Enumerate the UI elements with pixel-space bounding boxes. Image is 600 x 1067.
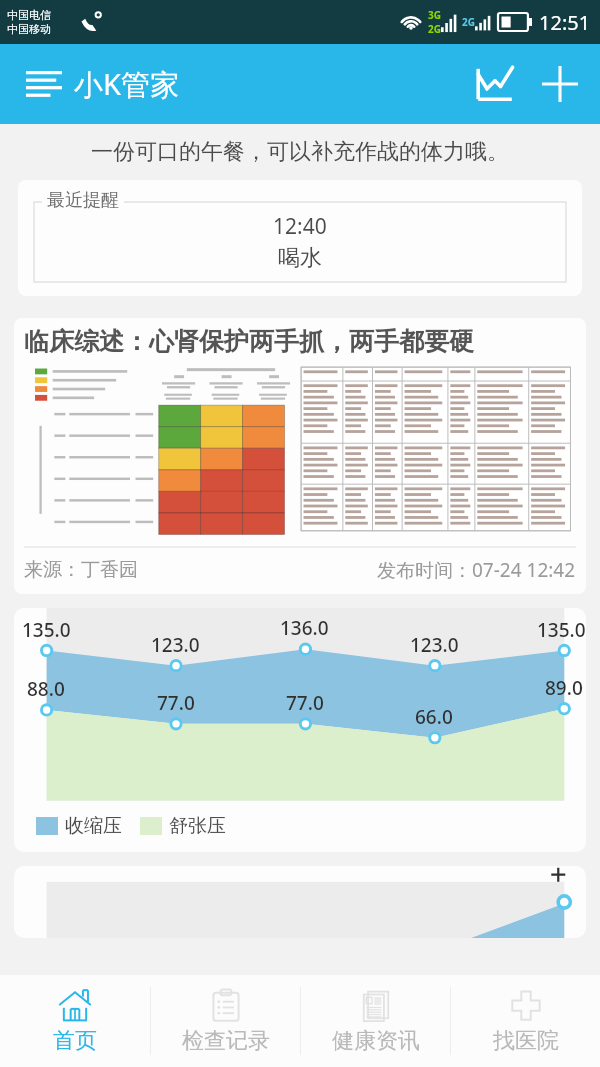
staticText: 3G: [428, 8, 441, 22]
staticText: 检查记录: [182, 1027, 270, 1055]
button[interactable]: 健康资讯: [301, 975, 450, 1067]
staticText: 2G: [428, 22, 441, 36]
staticText: 最近提醒: [47, 189, 119, 212]
button[interactable]: 找医院: [451, 975, 600, 1067]
staticText: 中国电信: [7, 8, 51, 22]
staticText: 89.0: [545, 675, 583, 701]
staticText: 小K管家: [74, 64, 179, 104]
staticText: 来源：丁香园: [24, 558, 138, 582]
button[interactable]: 检查记录: [151, 975, 300, 1067]
staticText: 中国移动: [7, 22, 51, 36]
staticText: 135.0: [537, 617, 586, 643]
button[interactable]: [14, 866, 586, 938]
staticText: 舒张压: [169, 814, 226, 838]
staticText: 首页: [53, 1027, 97, 1055]
button[interactable]: Menu: [16, 56, 72, 112]
staticText: 找医院: [493, 1027, 559, 1055]
staticText: 88.0: [27, 676, 65, 702]
button[interactable]: Charts: [460, 49, 530, 119]
button[interactable]: 12:40: [18, 180, 582, 296]
staticText: 136.0: [280, 615, 329, 641]
button[interactable]: Add: [530, 49, 590, 119]
staticText: 123.0: [151, 632, 200, 658]
staticText: 12:40: [273, 212, 327, 241]
staticText: 77.0: [286, 690, 324, 716]
staticText: 一份可口的午餐，可以补充作战的体力哦。: [14, 138, 586, 166]
staticText: 135.0: [22, 617, 71, 643]
staticText: 123.0: [410, 632, 459, 658]
staticText: 临床综述：心肾保护两手抓，两手都要硬: [24, 326, 474, 357]
staticText: 66.0: [415, 704, 453, 730]
staticText: 发布时间：07-24 12:42: [377, 557, 576, 583]
button[interactable]: 临床综述：心肾保护两手抓，两手都要硬: [14, 318, 586, 594]
button[interactable]: 首页: [0, 975, 150, 1067]
button[interactable]: 135.0: [14, 608, 586, 852]
staticText: 2G: [462, 15, 475, 29]
staticText: 77.0: [157, 690, 195, 716]
staticText: 喝水: [278, 244, 322, 272]
staticText: 健康资讯: [332, 1027, 420, 1055]
staticText: 12:51: [539, 9, 591, 36]
staticText: 收缩压: [65, 814, 122, 838]
